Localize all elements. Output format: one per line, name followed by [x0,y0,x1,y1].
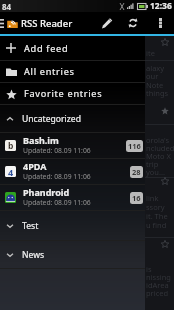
staticText: 116 [128,141,141,151]
button[interactable]: Uncategorized [0,105,145,132]
staticText: 84 [2,1,12,12]
staticText: orola's [146,135,170,145]
staticText: Favorite entries [24,87,103,100]
button[interactable]: All entries [0,61,145,82]
staticText: All entries [24,65,75,78]
staticText: Add feed [24,42,69,55]
staticText: alaxy [146,63,165,73]
staticText: Bash.im [23,134,59,146]
button[interactable]: Favorite entries [0,83,145,104]
staticText: 16 [132,193,141,203]
staticText: 12:36 [150,0,172,12]
button[interactable]: Test [0,211,145,240]
staticText: 28 [132,167,141,177]
staticText: Updated: 08.09 11:06 [23,198,91,207]
staticText: you... [146,167,166,177]
button[interactable]: 4 [0,159,145,184]
staticText: Updated: 08.09 11:06 [23,172,91,181]
staticText: Phandroid [23,186,70,198]
staticText: ssory [146,202,165,212]
button[interactable]: Open navigation drawer [0,12,5,34]
staticText: News [22,249,45,261]
staticText: priced [146,288,169,298]
button[interactable]: More options [146,12,174,34]
staticText: nissing [146,272,171,282]
button[interactable]: Phandroid [0,185,145,210]
button[interactable]: Refresh [120,12,146,34]
staticText: Moto X [146,151,171,161]
staticText: idArea [146,280,169,290]
button[interactable]: Add feed [0,36,145,60]
button[interactable]: News [0,241,145,268]
staticText: Note [146,80,164,90]
staticText: Test [22,220,39,232]
staticText: is [146,264,152,274]
button[interactable]: b [0,133,145,158]
staticText: Uncategorized [22,113,81,125]
staticText: link [146,193,159,203]
staticText: ite [146,48,155,58]
staticText: our [146,71,159,81]
staticText: RSS Reader [21,17,73,30]
staticText: ncluded [146,143,174,153]
staticText: u find [146,220,167,230]
staticText: 4 [8,166,14,177]
staticText: trip [146,159,159,169]
button[interactable]: Edit [94,12,120,34]
staticText: it. The [146,211,168,221]
staticText: Updated: 08.09 11:06 [23,146,91,155]
staticText: 4PDA [23,160,47,172]
staticText: b [8,140,14,151]
staticText: things [146,88,169,98]
